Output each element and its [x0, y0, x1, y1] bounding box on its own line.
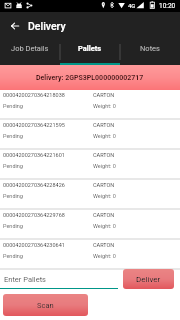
- button[interactable]: 00004200270364221601: [0, 150, 180, 180]
- staticText: 00004200270364221601: [3, 152, 65, 158]
- staticText: 00004200270364229768: [3, 212, 65, 218]
- button[interactable]: Scan: [3, 294, 88, 316]
- staticText: Weight: 0: [93, 223, 116, 229]
- staticText: 00004200270364228426: [3, 182, 65, 188]
- button[interactable]: 00004200270364218038: [0, 90, 180, 120]
- staticText: 00004200270364230641: [3, 242, 65, 248]
- button[interactable]: Deliver: [123, 269, 174, 289]
- staticText: Deliver: [136, 275, 161, 284]
- button[interactable]: Job Details: [0, 42, 60, 65]
- button[interactable]: 00004200270364228426: [0, 180, 180, 210]
- staticText: Weight: 0: [93, 163, 116, 169]
- staticText: Weight: 0: [93, 193, 116, 199]
- staticText: Enter Pallets: [4, 275, 46, 284]
- button[interactable]: 00004200270364221595: [0, 120, 180, 150]
- staticText: Delivery: [28, 20, 66, 32]
- staticText: Pending: [3, 193, 23, 199]
- staticText: CARTON: [93, 182, 115, 188]
- staticText: CARTON: [93, 212, 115, 218]
- staticText: Weight: 0: [93, 103, 116, 109]
- staticText: Pending: [3, 163, 23, 169]
- staticText: 00004200270364218038: [3, 92, 65, 98]
- staticText: CARTON: [93, 122, 115, 128]
- staticText: CARTON: [93, 92, 115, 98]
- staticText: CARTON: [93, 242, 115, 248]
- staticText: Delivery: 2GPS3PL000000002717: [36, 74, 144, 82]
- staticText: Weight: 0: [93, 253, 116, 259]
- button[interactable]: Back: [4, 15, 25, 36]
- staticText: CARTON: [93, 152, 115, 158]
- staticText: Pallets: [78, 44, 102, 53]
- staticText: Pending: [3, 253, 23, 259]
- staticText: Notes: [140, 44, 160, 53]
- staticText: Scan: [37, 301, 54, 310]
- staticText: 00004200270364221595: [3, 122, 65, 128]
- staticText: Pending: [3, 223, 23, 229]
- staticText: Pending: [3, 103, 23, 109]
- staticText: Job Details: [11, 44, 49, 53]
- button[interactable]: Notes: [120, 42, 180, 65]
- button[interactable]: Pallets: [60, 42, 120, 65]
- staticText: 4G: [128, 2, 136, 9]
- button[interactable]: 00004200270364229768: [0, 210, 180, 240]
- staticText: Weight: 0: [93, 133, 116, 139]
- staticText: Pending: [3, 133, 23, 139]
- button[interactable]: 00004200270364230641: [0, 240, 180, 270]
- staticText: 10:20: [159, 2, 176, 10]
